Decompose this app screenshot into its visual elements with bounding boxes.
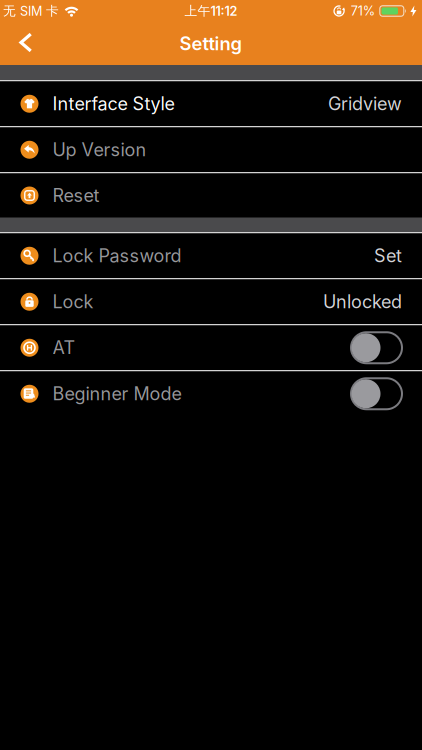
staticText: Reset bbox=[52, 185, 99, 206]
button[interactable]: Reset bbox=[0, 173, 422, 217]
button[interactable]: Beginner Mode bbox=[0, 371, 422, 416]
button[interactable]: Interface Style bbox=[0, 81, 422, 126]
staticText: 无 SIM 卡 bbox=[3, 3, 59, 19]
button[interactable]: Lock bbox=[0, 279, 422, 324]
staticText: Interface Style bbox=[52, 93, 174, 115]
button[interactable]: Back bbox=[0, 22, 44, 65]
button[interactable]: AT bbox=[351, 332, 402, 363]
staticText: 上午11:12 bbox=[184, 3, 237, 19]
staticText: Gridview bbox=[328, 93, 402, 115]
staticText: 71% bbox=[351, 3, 375, 19]
button[interactable]: AT bbox=[0, 325, 422, 370]
staticText: Set bbox=[374, 245, 402, 267]
button[interactable]: Up Version bbox=[0, 127, 422, 172]
staticText: Unlocked bbox=[323, 291, 402, 313]
button[interactable]: Beginner Mode bbox=[351, 378, 402, 409]
staticText: Lock Password bbox=[52, 245, 181, 267]
staticText: Up Version bbox=[52, 139, 146, 161]
staticText: Beginner Mode bbox=[52, 383, 181, 405]
staticText: Setting bbox=[179, 32, 242, 55]
staticText: Lock bbox=[52, 291, 93, 313]
staticText: AT bbox=[52, 337, 75, 359]
button[interactable]: Lock Password bbox=[0, 233, 422, 278]
